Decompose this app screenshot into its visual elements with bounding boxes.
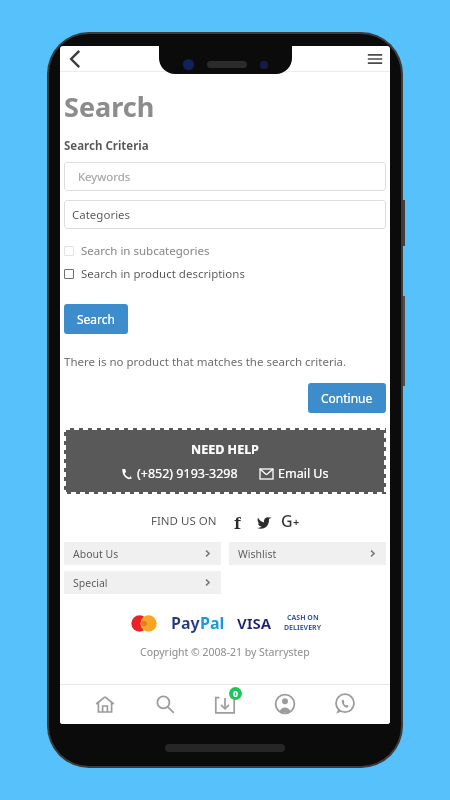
staticText: Search Criteria bbox=[64, 138, 149, 154]
button[interactable]: Search in product descriptions bbox=[64, 264, 386, 284]
button[interactable]: Google Plus bbox=[281, 510, 300, 532]
button[interactable]: About Us bbox=[64, 542, 221, 565]
button[interactable]: Categories bbox=[64, 200, 386, 229]
staticText: Special bbox=[73, 576, 203, 590]
staticText: VISA bbox=[237, 613, 272, 633]
staticText: CASH ON bbox=[287, 613, 319, 623]
button[interactable]: Menu bbox=[363, 47, 387, 71]
staticText: Categories bbox=[72, 207, 131, 223]
button[interactable]: Search bbox=[150, 689, 180, 719]
button[interactable]: Cart bbox=[210, 689, 240, 719]
button[interactable]: Special bbox=[64, 571, 221, 594]
staticText: NEED HELP bbox=[191, 441, 259, 458]
staticText: G bbox=[281, 510, 293, 532]
staticText: About Us bbox=[73, 547, 203, 561]
button[interactable]: WhatsApp bbox=[330, 689, 360, 719]
staticText: Copyright © 2008-21 by Starrystep bbox=[140, 645, 310, 659]
button[interactable]: Twitter bbox=[254, 511, 274, 531]
button[interactable]: Facebook bbox=[227, 511, 247, 531]
button[interactable]: Continue bbox=[308, 383, 386, 413]
button[interactable]: Home bbox=[90, 689, 120, 719]
staticText: There is no product that matches the sea… bbox=[64, 354, 347, 370]
button[interactable]: Search in subcategories bbox=[64, 241, 386, 261]
staticText: + bbox=[293, 514, 300, 529]
staticText: Search bbox=[77, 311, 115, 327]
staticText: Email Us bbox=[278, 465, 329, 482]
button[interactable]: Account bbox=[270, 689, 300, 719]
button[interactable]: Search bbox=[64, 304, 128, 334]
button[interactable]: Email Us bbox=[260, 465, 329, 482]
staticText: Search bbox=[64, 88, 155, 125]
staticText: Pay bbox=[171, 612, 200, 634]
button[interactable]: Keywords bbox=[64, 162, 386, 191]
staticText: 0 bbox=[233, 688, 238, 699]
staticText: FIND US ON bbox=[151, 513, 217, 529]
button[interactable]: (+852) 9193-3298 bbox=[121, 465, 238, 482]
staticText: f bbox=[234, 511, 241, 531]
button[interactable]: Wishlist bbox=[229, 542, 386, 565]
staticText: Pal bbox=[200, 612, 225, 634]
staticText: Wishlist bbox=[238, 547, 368, 561]
staticText: Search in product descriptions bbox=[81, 266, 245, 282]
staticText: DELIEVERY bbox=[284, 623, 322, 633]
button[interactable]: Back bbox=[63, 47, 87, 71]
staticText: Keywords bbox=[78, 169, 131, 185]
staticText: Search in subcategories bbox=[81, 243, 210, 259]
staticText: (+852) 9193-3298 bbox=[137, 465, 238, 482]
staticText: Continue bbox=[321, 390, 373, 406]
